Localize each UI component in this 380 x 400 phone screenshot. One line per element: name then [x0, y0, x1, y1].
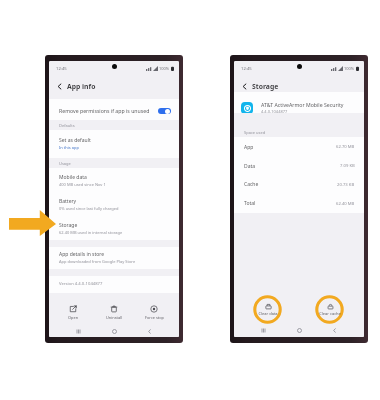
button[interactable]: App details in store	[49, 247, 179, 269]
staticText: 0% used since last fully charged	[59, 206, 119, 211]
staticText: 100%	[159, 66, 170, 71]
staticText: Cache	[244, 181, 259, 188]
staticText: App downloaded from Google Play Store	[59, 259, 136, 264]
staticText: Open	[68, 315, 79, 320]
button[interactable]: Back	[144, 326, 155, 337]
staticText: In this app	[59, 145, 79, 150]
staticText: 4.4.0-1044877	[261, 109, 288, 114]
button[interactable]: Total	[234, 194, 364, 213]
staticText: Remove permissions if app is unused	[59, 107, 150, 114]
button[interactable]: Back	[329, 325, 340, 336]
staticText: AT&T ActiveArmor Mobile Security	[261, 101, 344, 108]
staticText: Total	[244, 200, 256, 207]
button[interactable]: Home	[294, 325, 305, 336]
button[interactable]: Battery	[49, 192, 179, 216]
staticText: 12:45	[56, 66, 67, 72]
staticText: Version 4.4.0-1044877	[59, 281, 103, 287]
staticText: Uninstall	[106, 315, 123, 320]
button[interactable]: Cache	[234, 175, 364, 194]
button[interactable]: App	[234, 137, 364, 157]
staticText: 7.09 KB	[340, 163, 355, 169]
staticText: Storage	[252, 82, 279, 91]
staticText: Set as default	[59, 137, 91, 144]
button[interactable]: Force stop	[140, 305, 168, 323]
button[interactable]: Back	[54, 81, 64, 91]
staticText: 62.70 MB	[336, 144, 355, 150]
button[interactable]: Recents	[73, 326, 84, 337]
button[interactable]: Storage	[49, 216, 179, 240]
button[interactable]: Open	[59, 305, 87, 323]
button[interactable]: Recents	[258, 325, 269, 336]
button[interactable]: Back	[239, 81, 249, 91]
staticText: 20.73 KB	[337, 182, 355, 188]
staticText: Defaults	[59, 123, 75, 128]
staticText: Clear data	[258, 311, 278, 316]
staticText: 100%	[344, 66, 355, 71]
button[interactable]: Home	[109, 326, 120, 337]
staticText: Clear cache	[319, 311, 341, 316]
staticText: 400 MB used since Nov 1	[59, 182, 106, 187]
staticText: App details in store	[59, 251, 105, 258]
staticText: Force stop	[145, 315, 164, 320]
staticText: Battery	[59, 198, 77, 205]
button[interactable]: Remove permissions if app is unused	[49, 99, 179, 120]
button[interactable]: Clear data	[253, 295, 282, 324]
button[interactable]: Data	[234, 157, 364, 175]
staticText: Mobile data	[59, 174, 87, 181]
staticText: Storage	[59, 222, 78, 229]
staticText: 62.40 MB	[336, 201, 355, 207]
button[interactable]: Mobile data	[49, 168, 179, 192]
staticText: Data	[244, 163, 256, 170]
button[interactable]: AT&T ActiveArmor Mobile Security	[234, 92, 364, 113]
staticText: App info	[67, 82, 96, 91]
staticText: 62.40 MB used in internal storage	[59, 230, 123, 235]
staticText: Space used	[244, 130, 266, 135]
staticText: 12:45	[241, 66, 252, 72]
button[interactable]: Set as default	[49, 130, 179, 158]
staticText: Usage	[59, 161, 71, 166]
staticText: App	[244, 144, 254, 151]
button[interactable]: Clear cache	[315, 295, 344, 324]
button[interactable]: Uninstall	[100, 305, 128, 323]
